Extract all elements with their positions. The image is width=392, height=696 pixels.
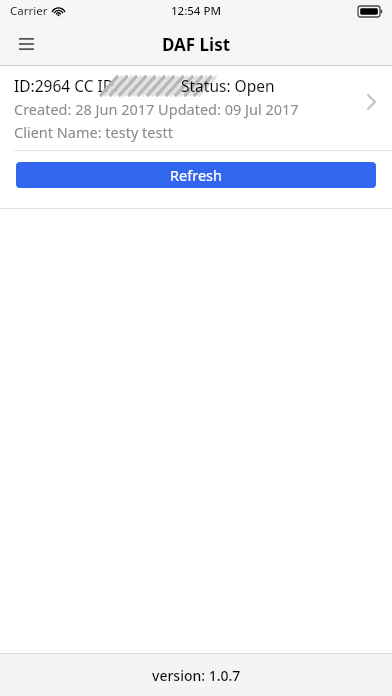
staticText: Created: 28 Jun 2017 Updated: 09 Jul 201…	[14, 99, 299, 119]
staticText: DAF List	[162, 33, 231, 56]
staticText: ID:2964 CC ID:	[14, 75, 119, 96]
staticText: Carrier	[10, 3, 48, 19]
staticText: 12:54 PM	[171, 3, 222, 19]
staticText: Client Name: testy testt	[14, 122, 173, 142]
staticText: Refresh	[170, 165, 222, 185]
button[interactable]: Menu	[8, 26, 44, 62]
staticText: Status: Open	[181, 75, 275, 96]
button[interactable]: Refresh	[16, 162, 376, 188]
staticText: version: 1.0.7	[152, 666, 241, 685]
button[interactable]: ID:2964 CC ID:	[0, 66, 392, 151]
